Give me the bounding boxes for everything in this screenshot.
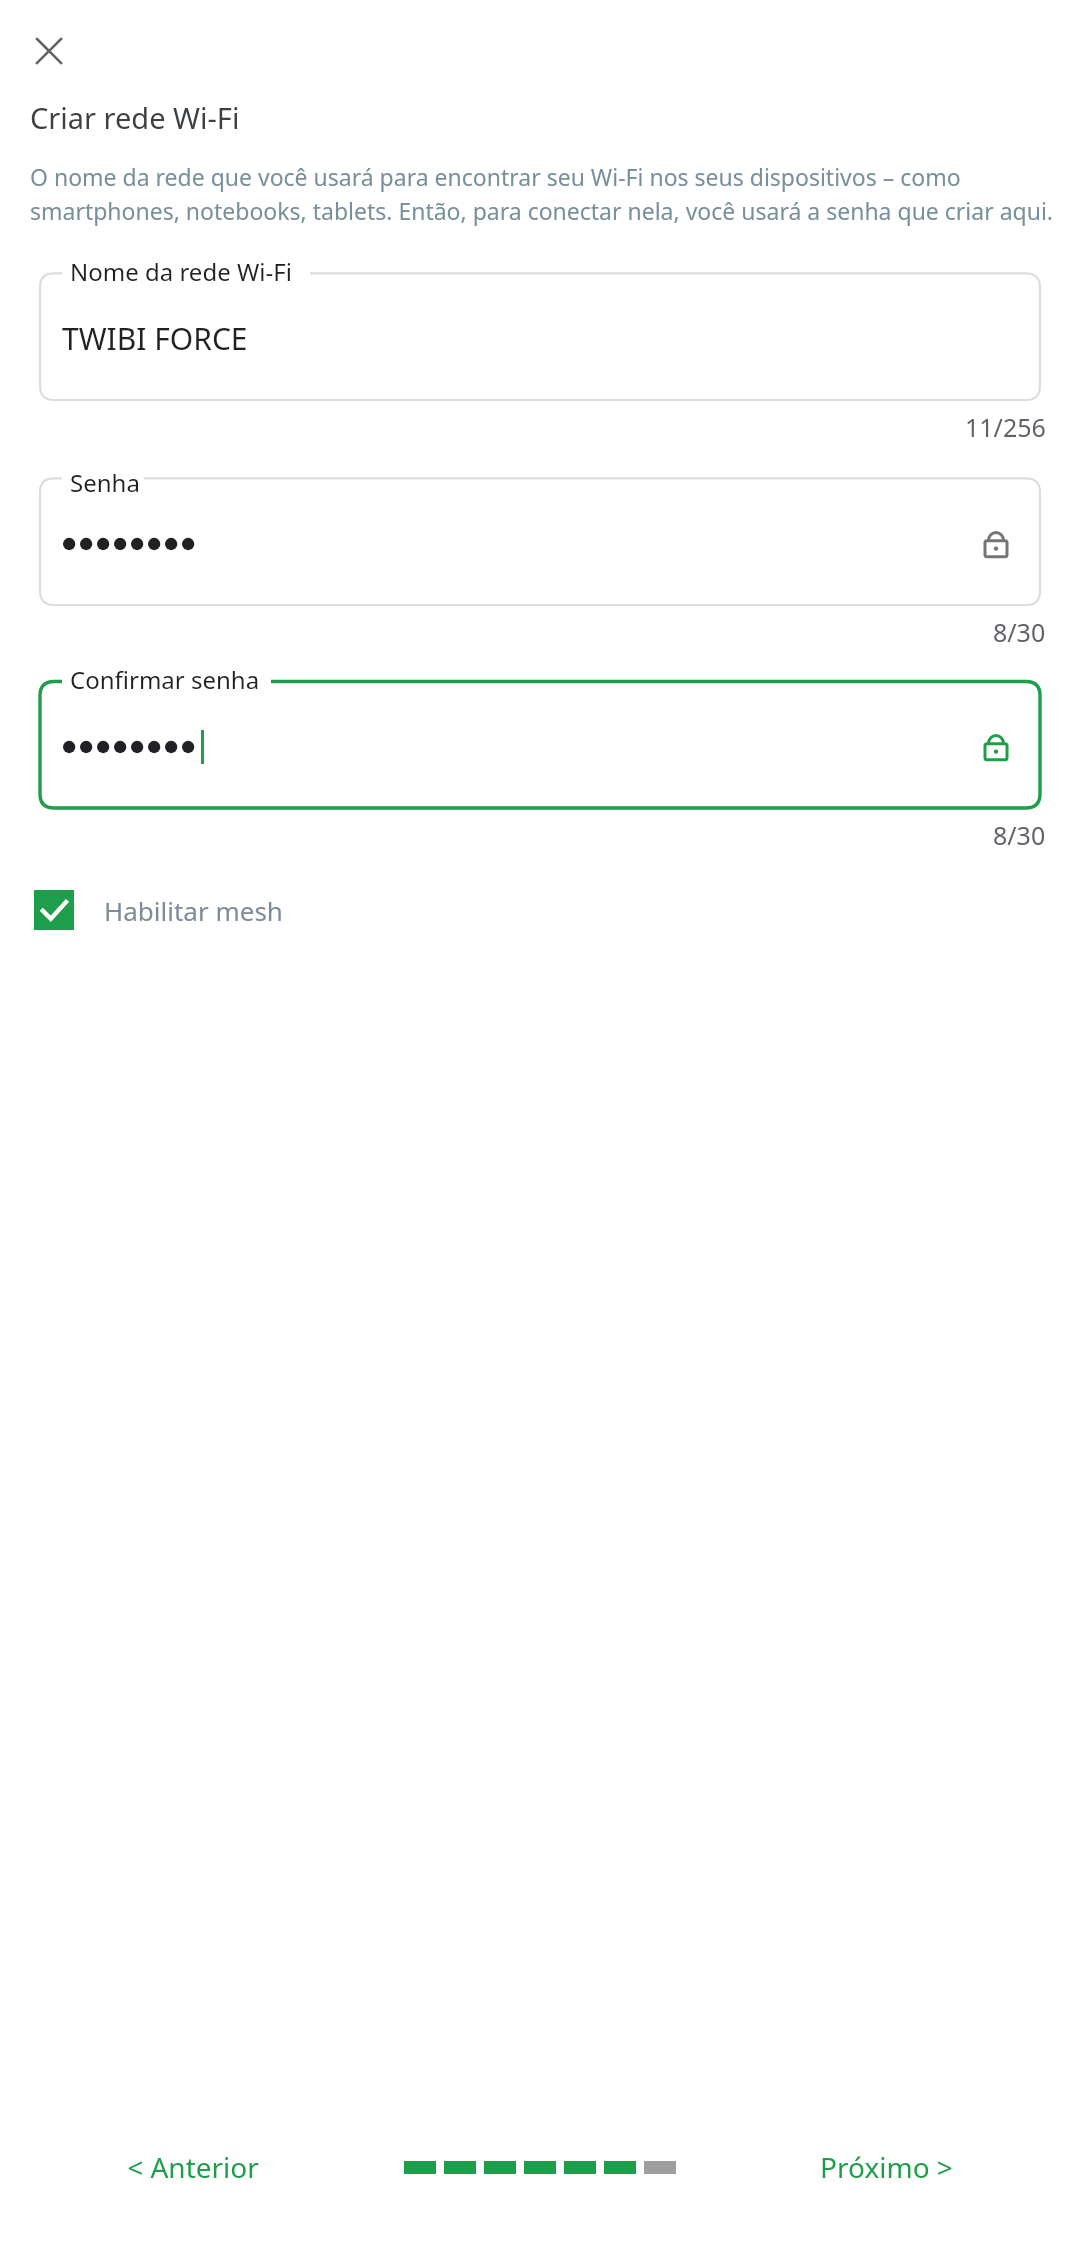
button[interactable]: Próximo >: [713, 2148, 1060, 2186]
staticText: Próximo >: [820, 2148, 953, 2186]
staticText: Criar rede Wi-Fi: [30, 98, 240, 137]
staticText: 11/256: [965, 410, 1046, 444]
staticText: TWIBI FORCE: [62, 318, 248, 359]
button[interactable]: Confirmar senha: [40, 665, 1040, 808]
staticText: < Anterior: [127, 2148, 259, 2186]
staticText: Nome da rede Wi-Fi: [70, 255, 292, 288]
staticText: 8/30: [993, 615, 1046, 649]
button[interactable]: Fechar: [18, 20, 80, 82]
button[interactable]: Habilitar mesh: [34, 884, 283, 936]
button[interactable]: Nome da rede Wi-Fi: [40, 257, 1040, 400]
staticText: Confirmar senha: [70, 663, 260, 696]
staticText: Habilitar mesh: [104, 893, 283, 928]
staticText: 8/30: [993, 818, 1046, 852]
button[interactable]: < Anterior: [20, 2148, 366, 2186]
staticText: Senha: [70, 466, 140, 492]
staticText: O nome da rede que você usará para encon…: [30, 161, 1056, 227]
button[interactable]: Senha: [40, 462, 1040, 605]
